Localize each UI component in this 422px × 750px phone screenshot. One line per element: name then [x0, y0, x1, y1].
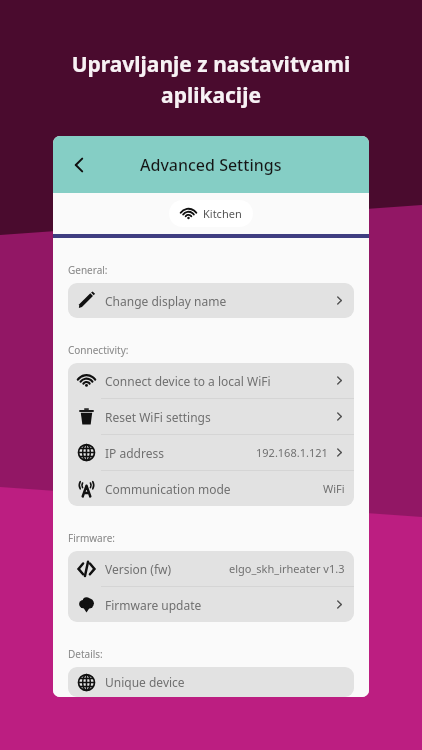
button[interactable]: IP address: [68, 435, 354, 470]
staticText: IP address: [105, 445, 164, 461]
staticText: Advanced Settings: [140, 154, 282, 176]
button[interactable]: Kitchen: [169, 200, 253, 227]
button[interactable]: Communication mode: [68, 471, 354, 506]
staticText: Communication mode: [105, 481, 231, 497]
staticText: Connect device to a local WiFi: [105, 373, 271, 389]
staticText: Connectivity:: [68, 343, 129, 357]
button[interactable]: Back: [59, 145, 99, 185]
button[interactable]: Firmware update: [68, 587, 354, 622]
button[interactable]: Connect device to a local WiFi: [68, 363, 354, 398]
staticText: Firmware:: [68, 531, 115, 545]
staticText: General:: [68, 263, 108, 277]
staticText: Unique device: [105, 674, 185, 690]
staticText: Upravljanje z nastavitvami aplikacije: [0, 50, 422, 109]
button[interactable]: Unique device: [68, 667, 354, 697]
staticText: 192.168.1.121: [256, 445, 328, 460]
staticText: Kitchen: [203, 206, 242, 221]
staticText: Reset WiFi settings: [105, 409, 211, 425]
staticText: Firmware update: [105, 597, 202, 613]
button[interactable]: Change display name: [68, 283, 354, 318]
staticText: Change display name: [105, 293, 227, 309]
staticText: elgo_skh_irheater v1.3: [229, 561, 345, 576]
button[interactable]: Version (fw): [68, 551, 354, 586]
button[interactable]: Reset WiFi settings: [68, 399, 354, 434]
staticText: Version (fw): [105, 561, 172, 577]
staticText: Details:: [68, 647, 103, 661]
staticText: WiFi: [323, 481, 345, 496]
